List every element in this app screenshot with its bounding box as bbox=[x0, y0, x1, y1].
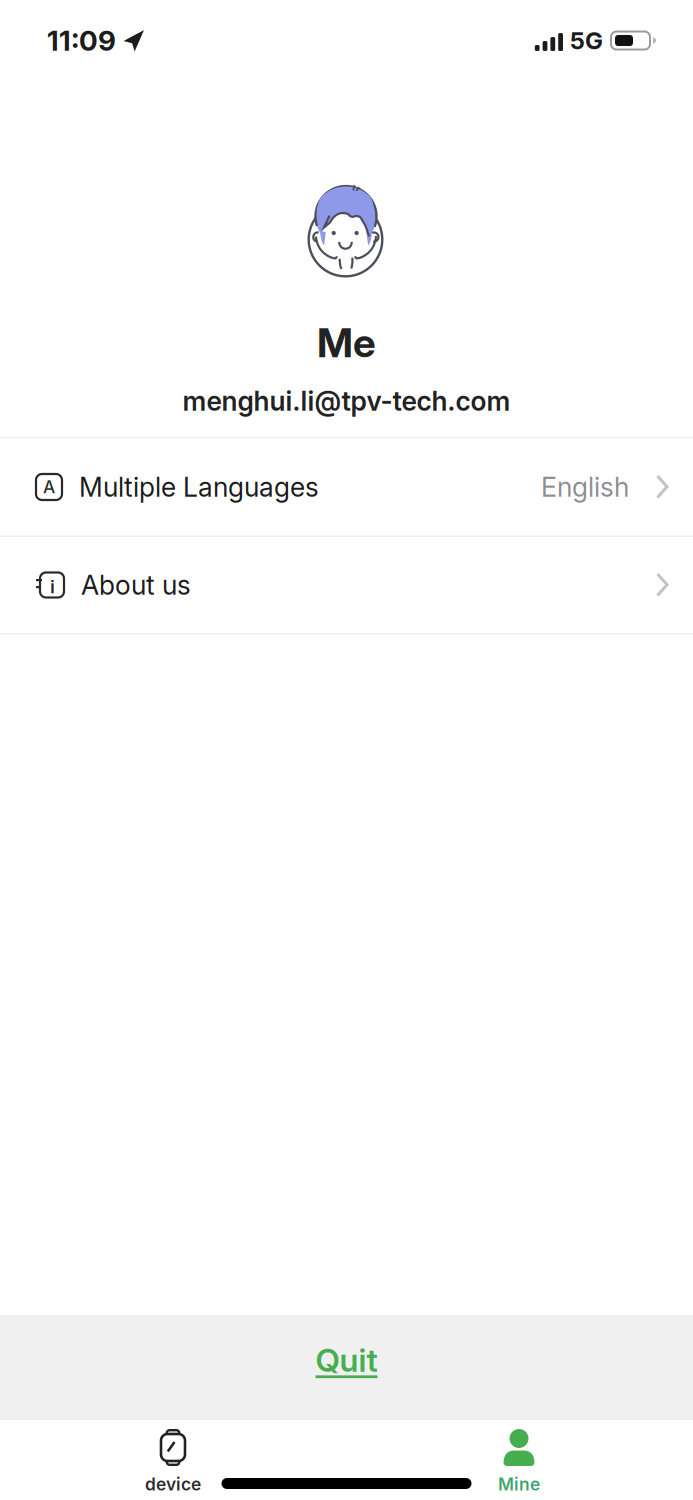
staticText: Mine bbox=[498, 1474, 540, 1494]
button[interactable]: device bbox=[113, 1429, 233, 1494]
staticText: menghui.li@tpv-tech.com bbox=[182, 385, 510, 417]
staticText: English bbox=[541, 471, 629, 503]
button[interactable]: Mine bbox=[459, 1429, 579, 1494]
staticText: i bbox=[50, 575, 55, 597]
staticText: Me bbox=[317, 319, 376, 366]
button[interactable]: A bbox=[0, 438, 693, 535]
staticText: 11:09 bbox=[47, 24, 116, 57]
staticText: 5G bbox=[570, 26, 603, 55]
staticText: About us bbox=[81, 569, 191, 601]
button[interactable]: Quit bbox=[0, 1315, 693, 1420]
staticText: Quit bbox=[315, 1341, 377, 1379]
button[interactable]: i bbox=[0, 537, 693, 633]
staticText: Multiple Languages bbox=[79, 471, 319, 503]
staticText: A bbox=[43, 477, 55, 497]
staticText: device bbox=[145, 1474, 201, 1494]
